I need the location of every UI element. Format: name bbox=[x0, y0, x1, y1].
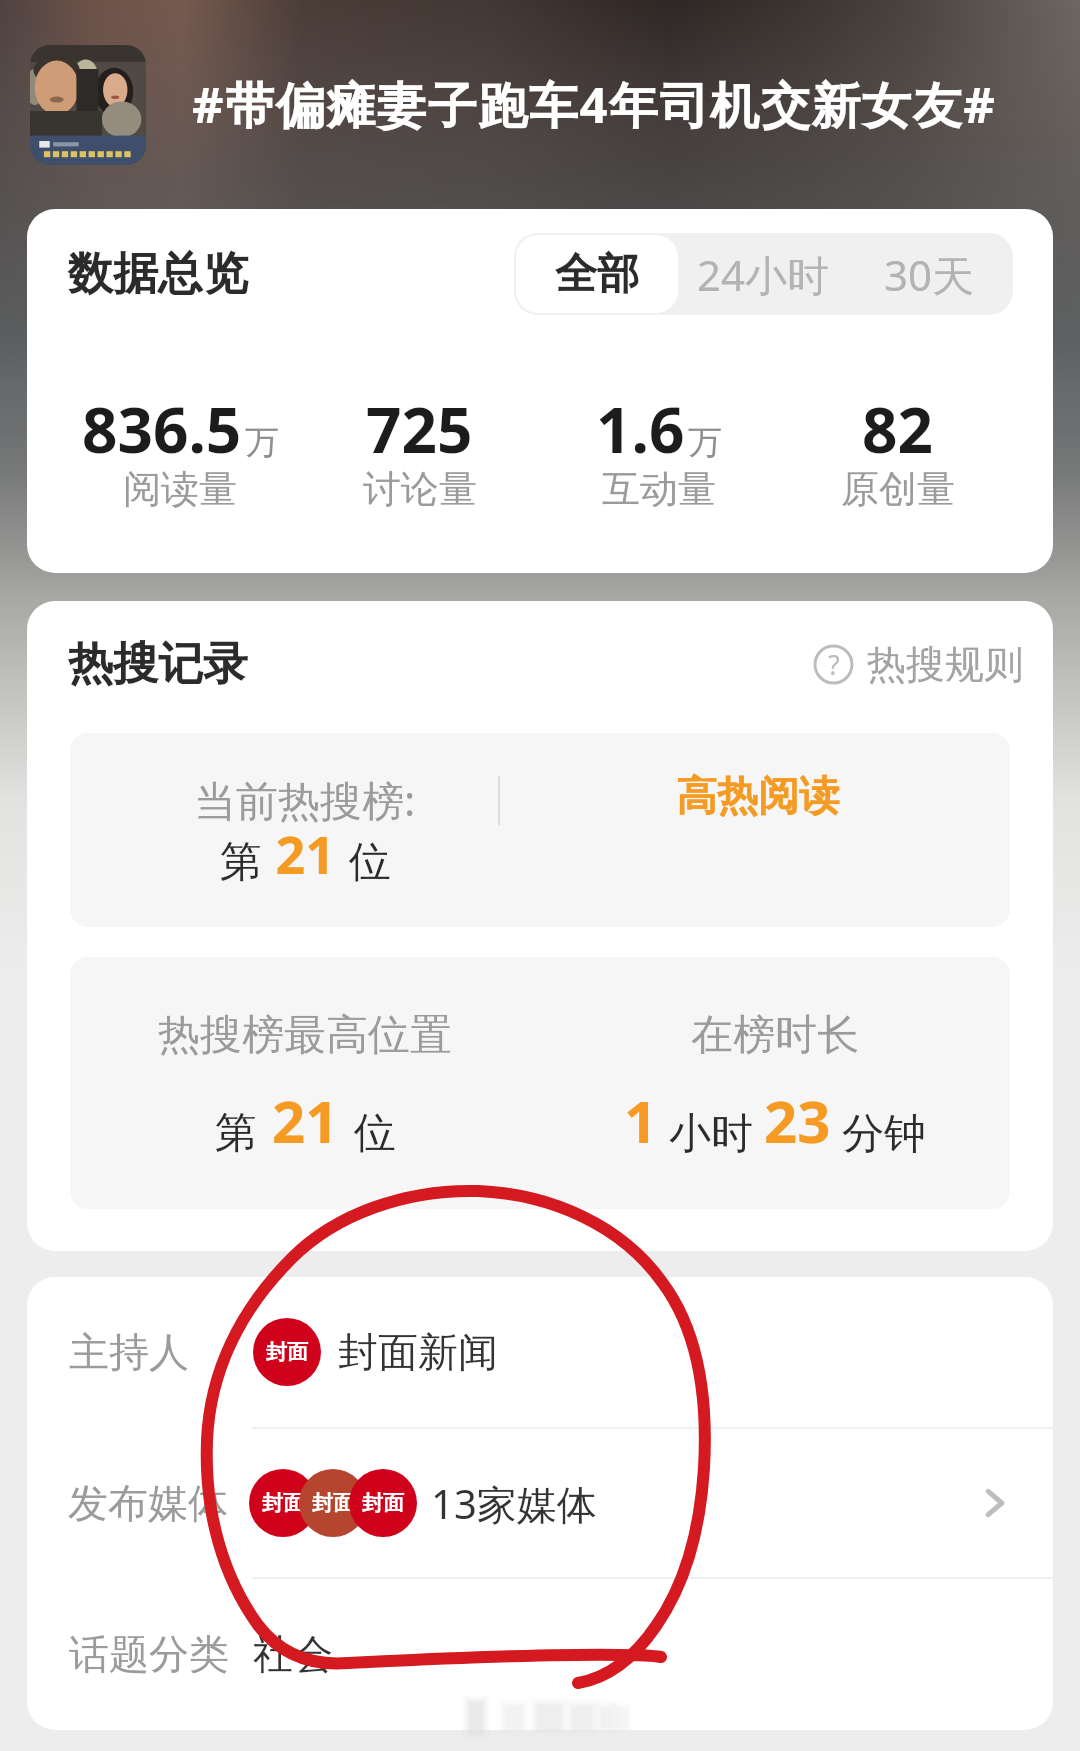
button[interactable]: #带偏瘫妻子跑车4年司机交新女友# bbox=[0, 0, 1080, 209]
staticText: 全部 bbox=[555, 248, 639, 301]
staticText: 发布媒体 bbox=[68, 1478, 228, 1528]
staticText: 21 bbox=[257, 1081, 354, 1160]
button[interactable]: ? bbox=[813, 640, 1023, 689]
staticText: 小时 bbox=[658, 1103, 764, 1160]
button[interactable]: 30天 bbox=[846, 233, 1013, 315]
staticText: 24小时 bbox=[697, 246, 830, 303]
staticText: 热搜规则 bbox=[867, 640, 1023, 689]
staticText: 836.5 bbox=[82, 387, 242, 471]
staticText: 位 bbox=[349, 836, 391, 889]
staticText: 主持人 bbox=[69, 1327, 189, 1377]
staticText: 万 bbox=[245, 421, 279, 464]
staticText: 讨论量 bbox=[363, 465, 477, 513]
other: View media list bbox=[978, 1486, 1012, 1520]
button[interactable]: 主持人 bbox=[27, 1277, 1053, 1427]
staticText: 21 bbox=[262, 818, 349, 889]
staticText: 当前热搜榜: bbox=[194, 771, 416, 828]
staticText: #带偏瘫妻子跑车4年司机交新女友# bbox=[192, 71, 997, 138]
staticText: 封面新闻 bbox=[338, 1327, 498, 1377]
staticText: 在榜时长 bbox=[691, 1009, 859, 1062]
staticText: 热搜榜最高位置 bbox=[158, 1009, 452, 1062]
staticText: 23 bbox=[764, 1081, 831, 1160]
staticText: 阅读量 bbox=[123, 465, 237, 513]
staticText: 封面 bbox=[262, 1490, 304, 1516]
staticText: 原创量 bbox=[841, 465, 955, 513]
staticText: 万 bbox=[688, 421, 722, 464]
staticText: 725 bbox=[366, 387, 473, 471]
staticText: 封面 bbox=[312, 1490, 354, 1516]
staticText: 分钟 bbox=[831, 1103, 926, 1160]
staticText: 数据总览 bbox=[68, 246, 248, 303]
button[interactable]: 全部 bbox=[516, 235, 678, 313]
staticText: 封面 bbox=[362, 1490, 404, 1516]
staticText: 第 bbox=[215, 1107, 257, 1160]
staticText: 社会 bbox=[253, 1629, 333, 1679]
staticText: 30天 bbox=[884, 246, 975, 303]
staticText: 话题分类 bbox=[69, 1629, 229, 1679]
staticText: 高热阅读 bbox=[676, 771, 840, 823]
staticText: 1.6 bbox=[596, 387, 685, 471]
button[interactable]: 24小时 bbox=[680, 233, 846, 315]
staticText: 82 bbox=[862, 387, 933, 471]
staticText: 封面 bbox=[266, 1339, 308, 1365]
staticText: 第 bbox=[220, 836, 262, 889]
staticText: 1 bbox=[624, 1081, 658, 1160]
staticText: 互动量 bbox=[602, 465, 716, 513]
staticText: 13家媒体 bbox=[431, 1476, 597, 1531]
staticText: ? bbox=[828, 646, 840, 683]
staticText: 位 bbox=[354, 1107, 396, 1160]
staticText: 热搜记录 bbox=[68, 636, 248, 693]
button[interactable]: 发布媒体 bbox=[27, 1429, 1053, 1577]
button[interactable]: 话题分类 bbox=[27, 1579, 1053, 1729]
